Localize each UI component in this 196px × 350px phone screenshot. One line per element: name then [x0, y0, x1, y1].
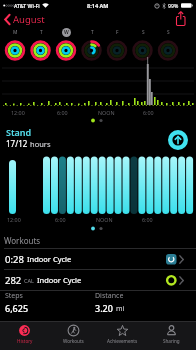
- staticText: Achievements: [107, 338, 138, 344]
- staticText: Workouts: [4, 235, 41, 246]
- staticText: NOON: [96, 216, 113, 223]
- button[interactable]: History: [0, 322, 49, 350]
- button[interactable]: [167, 129, 189, 151]
- staticText: T: [91, 29, 94, 36]
- button[interactable]: Sharing: [147, 322, 196, 350]
- staticText: 6:00: [142, 216, 153, 223]
- button[interactable]: 282: [0, 270, 196, 290]
- staticText: 6:00: [143, 109, 154, 116]
- staticText: 12:00: [11, 109, 25, 116]
- staticText: August: [13, 13, 45, 26]
- staticText: 6,625: [5, 302, 29, 314]
- button[interactable]: Workouts: [49, 322, 98, 350]
- staticText: mi: [116, 304, 125, 314]
- staticText: T: [40, 29, 43, 36]
- staticText: 282: [5, 274, 22, 287]
- staticText: Workouts: [63, 338, 84, 344]
- staticText: Indoor Cycle: [37, 275, 82, 285]
- button[interactable]: Achievements: [98, 322, 147, 350]
- staticText: 17/12: [6, 138, 30, 149]
- staticText: CAL: [24, 277, 34, 284]
- staticText: Steps: [5, 291, 23, 301]
- staticText: 6:00: [57, 109, 68, 116]
- staticText: 3.20: [95, 302, 116, 314]
- button[interactable]: 0:28: [0, 249, 196, 269]
- staticText: hours: [30, 139, 51, 149]
- staticText: S: [167, 29, 170, 36]
- staticText: 0:28: [5, 253, 24, 266]
- staticText: AT&T Wi-Fi: [14, 2, 40, 9]
- staticText: Stand: [6, 126, 32, 138]
- staticText: 12:00: [7, 216, 21, 223]
- staticText: 8:14 AM: [87, 2, 109, 10]
- staticText: NOON: [98, 109, 115, 116]
- button[interactable]: August: [2, 11, 47, 28]
- button[interactable]: [172, 10, 190, 28]
- staticText: History: [17, 338, 33, 344]
- staticText: Indoor Cycle: [27, 254, 72, 264]
- staticText: Distance: [95, 291, 124, 301]
- staticText: 99%: [168, 2, 179, 9]
- staticText: 6:00: [55, 216, 66, 223]
- staticText: F: [116, 29, 119, 36]
- staticText: W: [64, 29, 69, 36]
- staticText: M: [13, 29, 18, 36]
- staticText: S: [142, 29, 145, 36]
- staticText: Sharing: [163, 338, 180, 344]
